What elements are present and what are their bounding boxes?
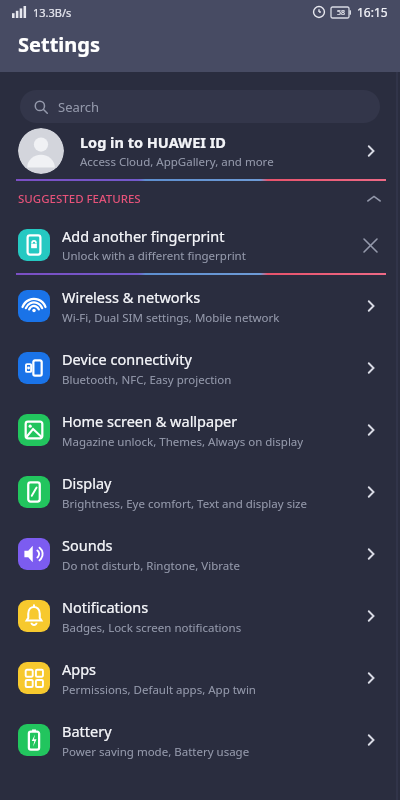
staticText: Display: [62, 473, 112, 493]
staticText: 13.3B/s: [33, 5, 72, 20]
staticText: Access Cloud, AppGallery, and more: [80, 154, 274, 170]
staticText: SUGGESTED FEATURES: [18, 191, 141, 207]
button[interactable]: Home screen & wallpaper: [0, 399, 400, 461]
staticText: Battery: [62, 721, 112, 741]
staticText: Log in to HUAWEI ID: [80, 132, 226, 152]
staticText: Notifications: [62, 597, 149, 617]
staticText: 58: [337, 8, 346, 18]
button[interactable]: Add another fingerprint: [0, 217, 400, 273]
button[interactable]: Search: [20, 90, 380, 123]
button[interactable]: Apps: [0, 647, 400, 709]
staticText: Settings: [18, 31, 100, 58]
button[interactable]: Display: [0, 461, 400, 523]
staticText: Power saving mode, Battery usage: [62, 744, 250, 760]
staticText: Do not disturb, Ringtone, Vibrate: [62, 558, 240, 574]
other: Collapse suggested features: [366, 191, 382, 207]
button[interactable]: Dismiss suggestion: [354, 229, 386, 261]
button[interactable]: Notifications: [0, 585, 400, 647]
staticText: Wireless & networks: [62, 287, 201, 307]
button[interactable]: Log in to HUAWEI ID: [0, 123, 400, 179]
staticText: Magazine unlock, Themes, Always on displ…: [62, 434, 304, 450]
staticText: Device connectivity: [62, 349, 192, 369]
staticText: Bluetooth, NFC, Easy projection: [62, 372, 232, 388]
staticText: Badges, Lock screen notifications: [62, 620, 242, 636]
button[interactable]: Wireless & networks: [0, 275, 400, 337]
staticText: 16:15: [357, 4, 388, 20]
staticText: Apps: [62, 659, 97, 679]
staticText: Brightness, Eye comfort, Text and displa…: [62, 496, 308, 512]
staticText: Sounds: [62, 535, 113, 555]
staticText: Permissions, Default apps, App twin: [62, 682, 256, 698]
staticText: Home screen & wallpaper: [62, 411, 238, 431]
button[interactable]: Sounds: [0, 523, 400, 585]
staticText: Unlock with a different fingerprint: [62, 248, 246, 264]
button[interactable]: Device connectivity: [0, 337, 400, 399]
staticText: Wi-Fi, Dual SIM settings, Mobile network: [62, 310, 280, 326]
button[interactable]: Battery: [0, 709, 400, 771]
button[interactable]: SUGGESTED FEATURES: [0, 181, 400, 217]
staticText: Search: [58, 98, 100, 116]
staticText: Add another fingerprint: [62, 226, 225, 246]
